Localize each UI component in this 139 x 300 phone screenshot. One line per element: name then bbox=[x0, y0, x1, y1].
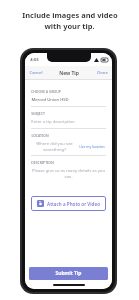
staticText: New Tip bbox=[59, 70, 79, 77]
staticText: Use my location bbox=[79, 144, 105, 149]
staticText: SUBJECT bbox=[31, 111, 45, 116]
staticText: Attach a Photo or Video bbox=[47, 201, 100, 207]
staticText: with your tip. bbox=[44, 21, 95, 31]
staticText: Done bbox=[97, 70, 108, 76]
staticText: Please give us as many details as you ca… bbox=[31, 168, 106, 179]
button[interactable]: Use my location bbox=[78, 143, 106, 150]
button[interactable]: Attach a Photo or Video bbox=[31, 196, 106, 211]
staticText: Include images and video bbox=[22, 10, 118, 20]
staticText: Enter a tip description bbox=[31, 119, 75, 125]
staticText: Cancel bbox=[29, 70, 43, 76]
staticText: Merced Union HSD bbox=[31, 97, 69, 103]
staticText: 4:03 bbox=[30, 57, 39, 63]
staticText: CHOOSE A GROUP bbox=[31, 89, 61, 94]
button[interactable]: Done bbox=[93, 67, 112, 79]
staticText: DESCRIPTION bbox=[31, 160, 54, 165]
staticText: LOCATION bbox=[31, 133, 49, 138]
button[interactable]: Submit Tip bbox=[29, 267, 108, 280]
staticText: Submit Tip bbox=[55, 270, 82, 277]
button[interactable]: Cancel bbox=[25, 67, 47, 79]
staticText: Where did you see something? bbox=[31, 141, 78, 152]
